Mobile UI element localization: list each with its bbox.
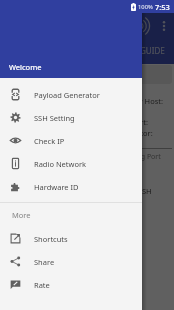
staticText: 7:53 — [155, 2, 170, 12]
staticText: Rate — [34, 280, 50, 290]
staticText: 100% — [138, 3, 153, 11]
staticText: Radio Network — [34, 159, 87, 169]
staticText: SSH Setting — [34, 113, 75, 123]
staticText: Port: — [131, 117, 148, 127]
button[interactable]: Check IP — [0, 129, 142, 152]
button[interactable]: Shortcuts — [0, 227, 142, 250]
button[interactable]: Hardware ID — [0, 175, 142, 198]
staticText: Payload Generator — [34, 90, 100, 100]
button[interactable]: Share — [0, 250, 142, 273]
staticText: Listening Port — [115, 152, 161, 162]
button[interactable]: GUIDE — [124, 42, 174, 62]
staticText: Shortcuts — [34, 234, 68, 244]
button[interactable]: Payload Generator — [0, 83, 142, 106]
staticText: More — [12, 210, 31, 220]
staticText: Proxy Host: — [123, 96, 164, 106]
button[interactable]: Rate — [0, 273, 142, 296]
staticText: Welcome — [9, 62, 42, 72]
staticText: Hardware ID — [34, 182, 79, 192]
staticText: Check IP — [34, 136, 65, 146]
staticText: Connector: — [114, 128, 153, 138]
staticText: Direct SSH — [115, 186, 152, 196]
button[interactable]: Radio Network — [0, 152, 142, 175]
button[interactable]: Network status — [134, 16, 153, 35]
staticText: Share — [34, 257, 55, 267]
staticText: GUIDE — [140, 45, 165, 56]
button[interactable]: More options — [154, 16, 173, 35]
button[interactable]: SSH Setting — [0, 106, 142, 129]
